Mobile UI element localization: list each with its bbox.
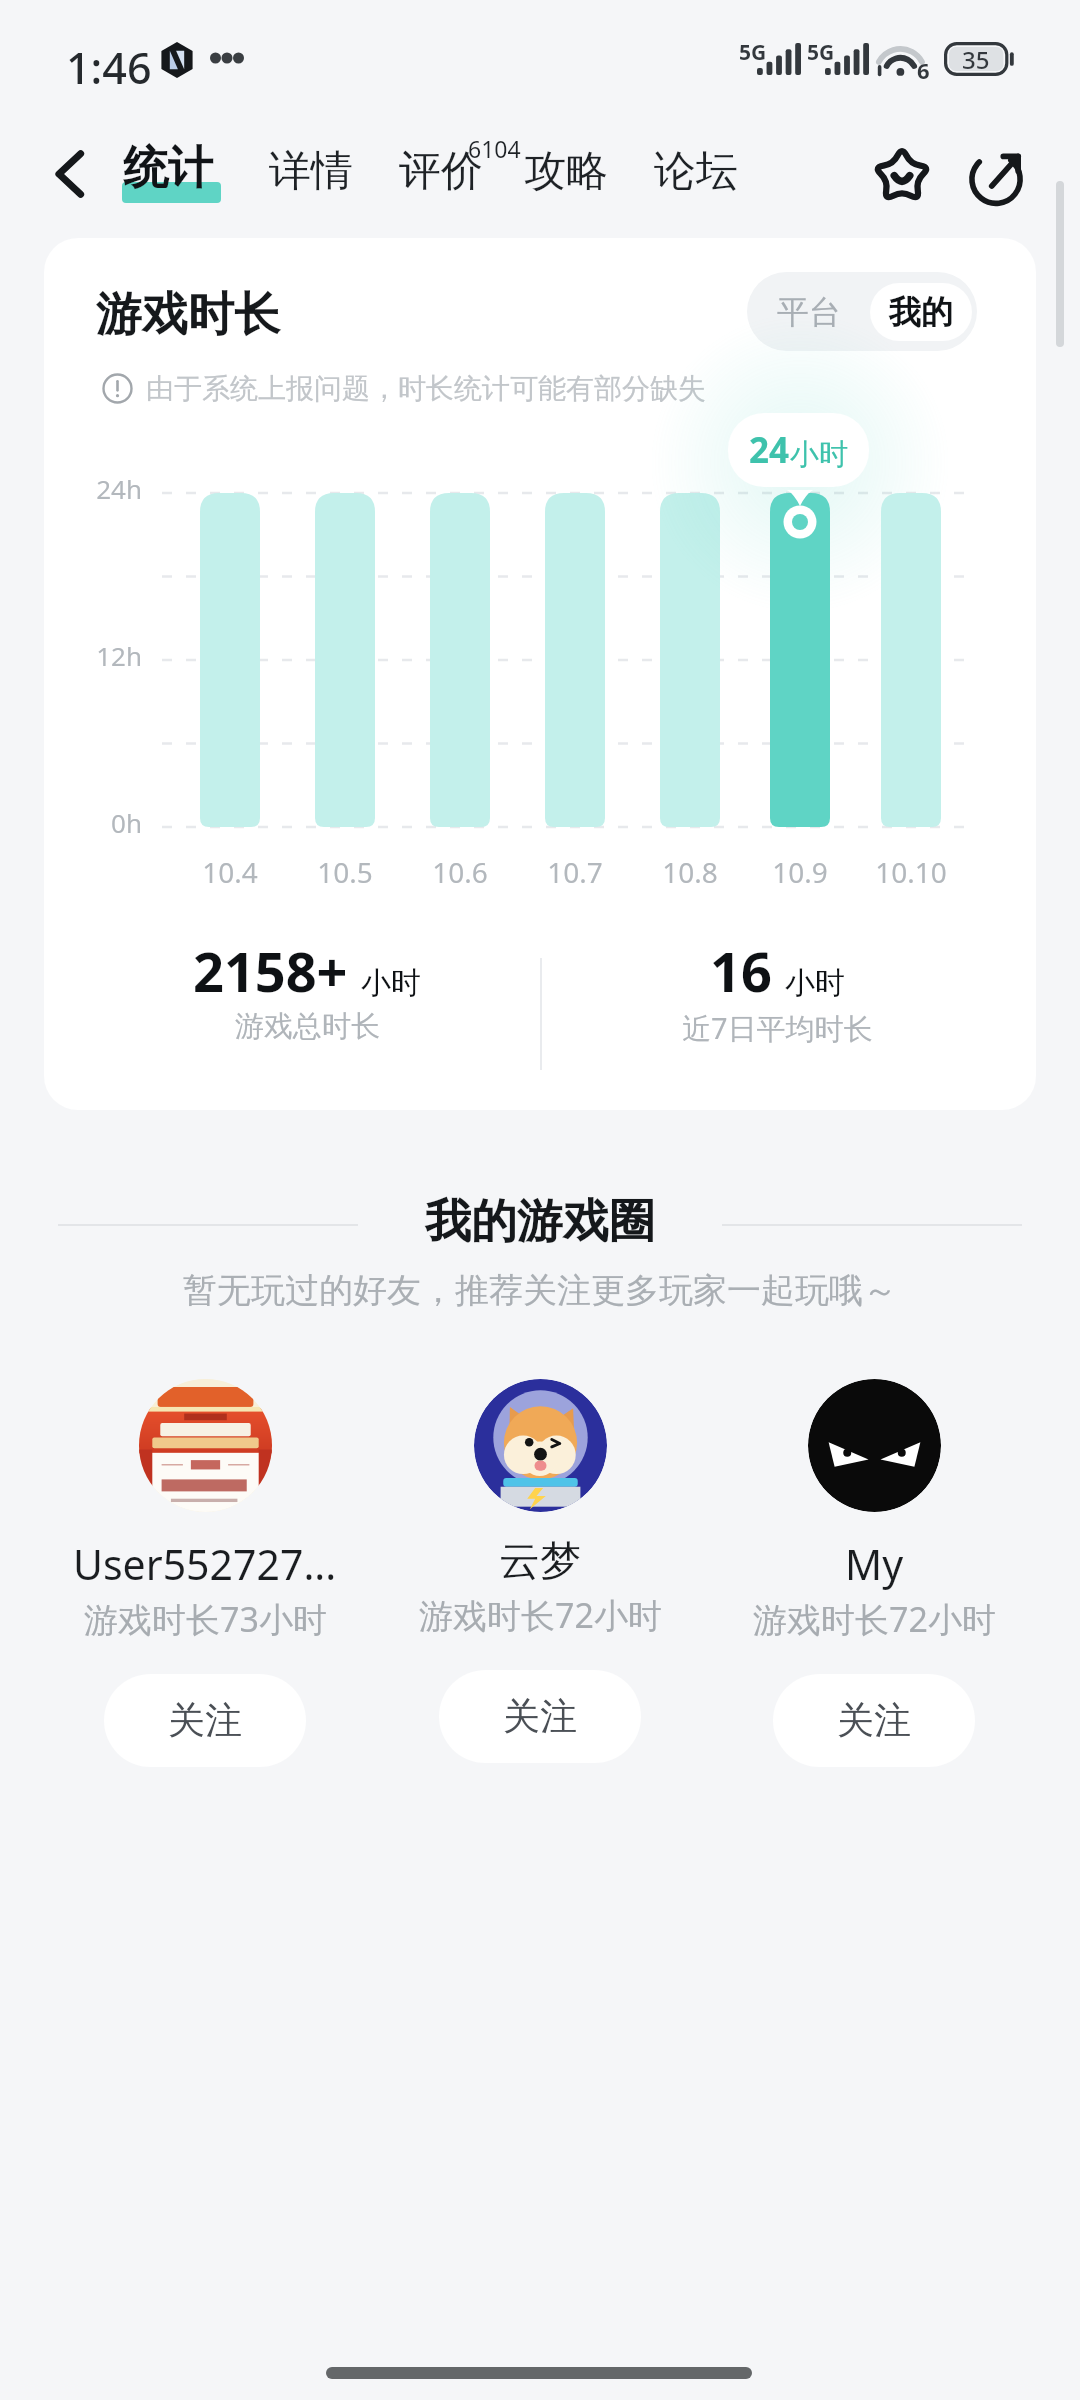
button[interactable]: 云梦	[370, 1379, 710, 1763]
button[interactable]: 我的	[870, 283, 972, 341]
staticText: 详情	[269, 145, 353, 198]
button[interactable]: Share	[952, 128, 1044, 220]
button[interactable]: User552727...	[35, 1379, 375, 1767]
button[interactable]: 攻略	[521, 131, 611, 211]
staticText: 平台	[777, 292, 841, 332]
button[interactable]: 关注	[104, 1674, 306, 1767]
button[interactable]: 详情	[266, 131, 356, 211]
staticText: 小时	[785, 964, 845, 1002]
staticText: 暂无玩过的好友，推荐关注更多玩家一起玩哦～	[183, 1269, 897, 1312]
staticText: 1:46	[66, 38, 152, 97]
button[interactable]: 论坛	[651, 131, 741, 211]
staticText: 游戏总时长	[235, 1008, 380, 1045]
button[interactable]: 平台	[747, 272, 870, 351]
staticText: 10.4	[202, 853, 258, 891]
staticText: 我的	[889, 292, 953, 332]
button[interactable]: 统计	[110, 126, 226, 222]
button[interactable]: 评价	[396, 118, 518, 218]
staticText: 6104	[468, 133, 521, 164]
staticText: 24	[749, 426, 790, 474]
button[interactable]: Favorite	[856, 128, 948, 220]
staticText: 6	[917, 55, 930, 85]
staticText: 云梦	[499, 1536, 581, 1588]
staticText: 12h	[46, 638, 142, 673]
staticText: 10.5	[317, 853, 373, 891]
staticText: 游戏时长72小时	[753, 1596, 996, 1642]
staticText: 游戏时长72小时	[419, 1592, 662, 1638]
staticText: 10.10	[875, 853, 947, 891]
staticText: 近7日平均时长	[682, 1008, 873, 1048]
staticText: 评价	[399, 145, 483, 198]
staticText: 小时	[790, 436, 848, 473]
staticText: 小时	[361, 964, 421, 1002]
staticText: 关注	[837, 1697, 911, 1744]
button[interactable]: Back	[28, 132, 112, 216]
staticText: 10.9	[772, 853, 828, 891]
button[interactable]: My	[704, 1379, 1044, 1767]
button[interactable]: 关注	[439, 1670, 641, 1763]
staticText: User552727...	[73, 1536, 337, 1592]
staticText: 5G	[739, 38, 767, 67]
staticText: 游戏时长	[96, 286, 280, 344]
staticText: 游戏时长73小时	[84, 1596, 327, 1642]
button[interactable]: 关注	[773, 1674, 975, 1767]
staticText: 由于系统上报问题，时长统计可能有部分缺失	[146, 371, 706, 406]
staticText: 关注	[503, 1693, 577, 1740]
staticText: 统计	[123, 140, 213, 197]
staticText: 24h	[46, 471, 142, 506]
staticText: 0h	[46, 805, 142, 840]
staticText: 论坛	[654, 145, 738, 198]
staticText: 5G	[807, 38, 835, 67]
staticText: 攻略	[524, 145, 608, 198]
staticText: 我的游戏圈	[425, 1193, 655, 1251]
staticText: 35	[962, 43, 990, 76]
staticText: 2158+	[193, 934, 348, 1008]
staticText: My	[845, 1536, 904, 1592]
staticText: 10.6	[432, 853, 488, 891]
staticText: 关注	[168, 1697, 242, 1744]
staticText: 10.7	[547, 853, 603, 891]
staticText: 10.8	[662, 853, 718, 891]
staticText: 16	[710, 934, 772, 1008]
